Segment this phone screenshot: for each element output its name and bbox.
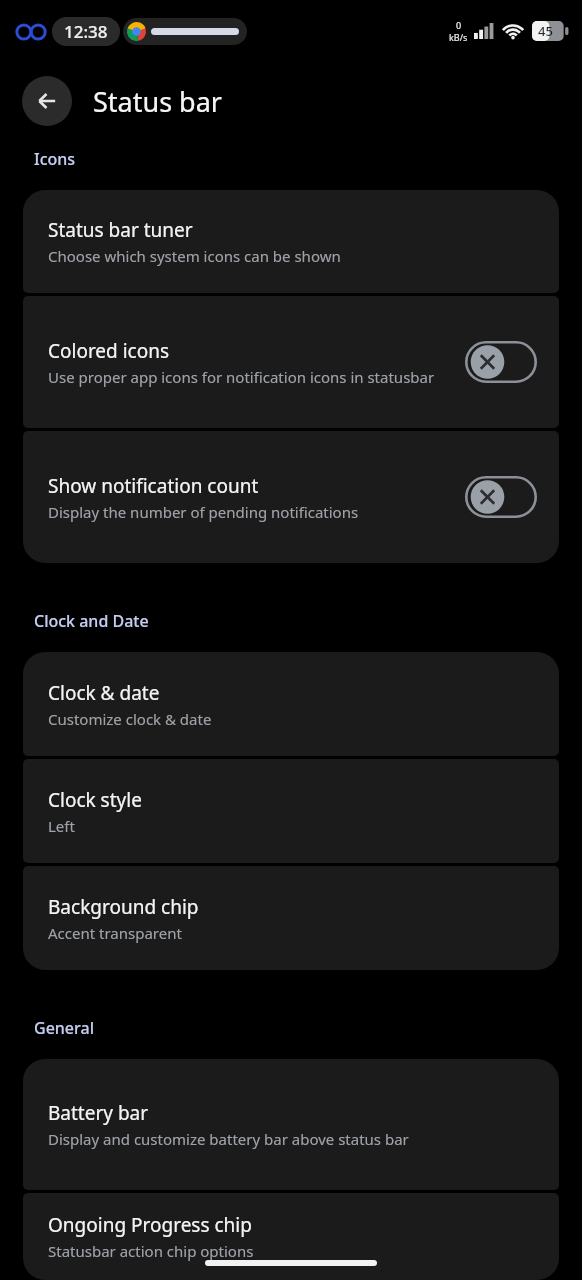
staticText: Clock and Date [34,610,149,632]
staticText: Icons [34,148,76,170]
staticText: Left [48,816,537,836]
staticText: 12:38 [64,20,108,43]
button[interactable]: Toggle off [465,341,537,383]
staticText: Clock style [48,787,142,813]
button[interactable]: Clock & date [23,652,559,756]
staticText: Show notification count [48,473,259,499]
staticText: Accent transparent [48,923,537,943]
staticText: Ongoing Progress chip [48,1212,252,1238]
button[interactable]: Status bar tuner [23,190,559,293]
staticText: Customize clock & date [48,709,537,729]
staticText: Use proper app icons for notification ic… [48,367,455,387]
staticText: 45 [538,22,553,40]
staticText: kB/s [449,31,468,43]
button[interactable]: Colored icons [23,296,559,428]
staticText: Status bar [93,83,223,120]
button[interactable]: Ongoing Progress chip [23,1193,559,1280]
button[interactable]: Back [22,76,72,126]
button[interactable]: Show notification count [23,431,559,563]
button[interactable]: Toggle off [465,476,537,518]
staticText: General [34,1017,94,1039]
staticText: Clock & date [48,680,160,706]
staticText: Statusbar action chip options [48,1241,537,1261]
button[interactable]: Background chip [23,866,559,970]
staticText: Colored icons [48,338,170,364]
staticText: Battery bar [48,1100,149,1126]
staticText: Status bar tuner [48,217,193,243]
staticText: Background chip [48,894,199,920]
staticText: Display and customize battery bar above … [48,1129,537,1149]
staticText: 0 [456,19,462,31]
staticText: Choose which system icons can be shown [48,246,537,266]
button[interactable]: Battery bar [23,1059,559,1190]
staticText: Display the number of pending notificati… [48,502,422,522]
button[interactable]: Clock style [23,759,559,863]
